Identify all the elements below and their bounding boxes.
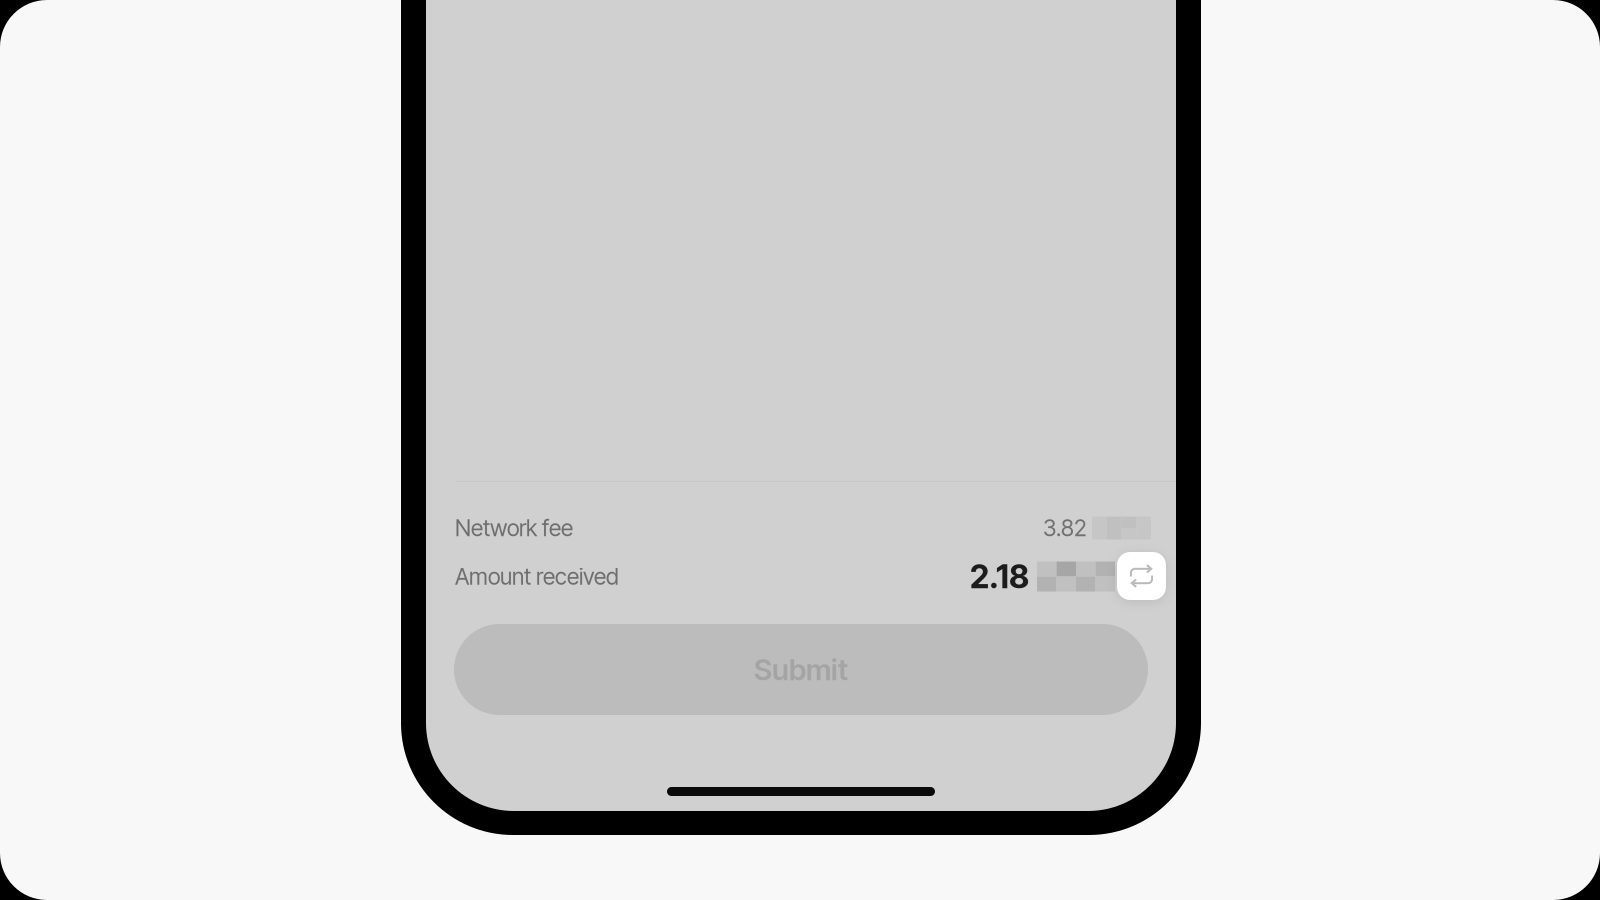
staticText: Amount received	[455, 563, 619, 590]
staticText: Network fee	[455, 514, 573, 542]
staticText: 3.82	[1043, 514, 1087, 542]
button[interactable]: Submit	[454, 624, 1148, 715]
button[interactable]: Swap currency	[1117, 552, 1166, 600]
staticText: 2.18	[970, 557, 1029, 596]
staticText: Submit	[754, 652, 848, 687]
